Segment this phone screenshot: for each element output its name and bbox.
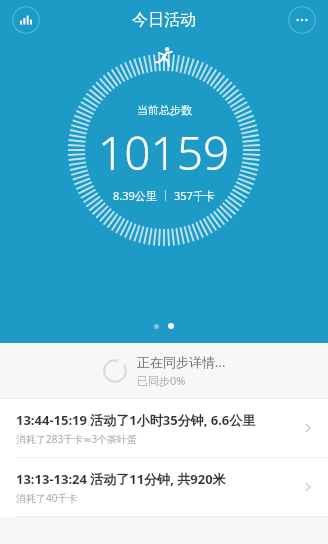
- button[interactable]: Page 2: [168, 323, 174, 329]
- button[interactable]: More options: [288, 6, 316, 34]
- staticText: 8.39公里: [113, 188, 157, 203]
- button[interactable]: 13:44-15:19 活动了1小时35分钟, 6.6公里: [0, 399, 328, 457]
- staticText: 消耗了283千卡≈3个茶叶蛋: [16, 432, 138, 446]
- button[interactable]: 13:13-13:24 活动了11分钟, 共920米: [0, 458, 328, 516]
- button[interactable]: 正在同步详情...: [0, 343, 328, 398]
- staticText: 357千卡: [174, 188, 215, 203]
- staticText: 13:44-15:19 活动了1小时35分钟, 6.6公里: [16, 411, 256, 429]
- button[interactable]: Page 1: [154, 324, 159, 329]
- staticText: 正在同步详情...: [137, 353, 226, 371]
- staticText: 13:13-13:24 活动了11分钟, 共920米: [16, 470, 226, 488]
- button[interactable]: Statistics: [12, 6, 40, 34]
- staticText: 今日活动: [132, 10, 196, 30]
- staticText: 已同步0%: [137, 373, 186, 388]
- staticText: 10159: [98, 121, 230, 184]
- staticText: 消耗了40千卡: [16, 491, 78, 505]
- staticText: 当前总步数: [137, 103, 192, 117]
